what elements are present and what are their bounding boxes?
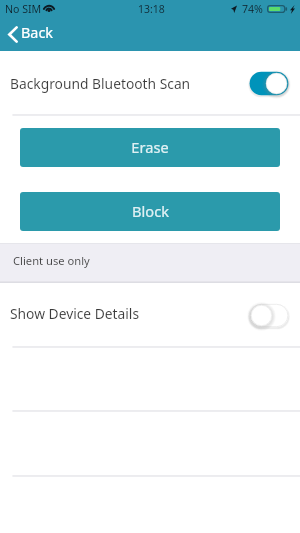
button[interactable]: Block [20, 192, 280, 231]
staticText: Background Bluetooth Scan [10, 74, 191, 93]
staticText: Show Device Details [10, 304, 140, 323]
staticText: No SIM [5, 2, 42, 16]
button[interactable]: Back [0, 23, 64, 47]
button[interactable]: Toggle on [247, 69, 291, 98]
staticText: 74% [242, 2, 263, 16]
button[interactable]: Toggle off [247, 301, 291, 330]
staticText: Client use only [13, 253, 90, 268]
button[interactable]: Erase [20, 128, 280, 167]
button[interactable]: Background Bluetooth Scan [0, 51, 300, 115]
staticText: Erase [131, 137, 169, 157]
staticText: Back [21, 23, 54, 43]
button[interactable]: Show Device Details [0, 283, 300, 347]
staticText: 13:18 [138, 2, 165, 16]
staticText: Block [132, 201, 169, 221]
